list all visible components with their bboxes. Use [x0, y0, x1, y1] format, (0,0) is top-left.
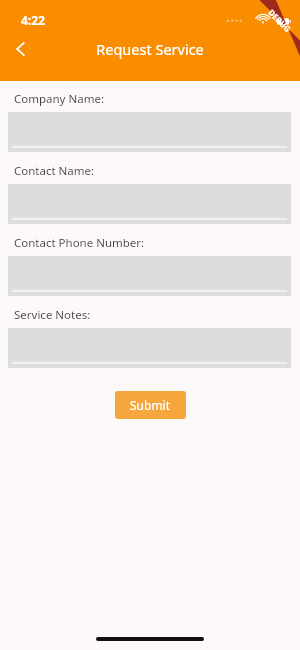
- button[interactable]: [8, 256, 291, 296]
- staticText: Submit: [130, 397, 171, 413]
- staticText: Request Service: [0, 39, 300, 59]
- button[interactable]: [8, 328, 291, 368]
- button[interactable]: [8, 184, 291, 224]
- button[interactable]: Submit: [115, 391, 186, 419]
- staticText: DEBUG: [266, 7, 294, 34]
- staticText: Service Notes:: [14, 307, 91, 323]
- button[interactable]: [8, 112, 291, 152]
- button[interactable]: Back: [0, 28, 42, 70]
- staticText: Contact Name:: [14, 163, 95, 179]
- staticText: Company Name:: [14, 91, 104, 107]
- staticText: 4:22: [21, 12, 45, 28]
- staticText: Contact Phone Number:: [14, 235, 145, 251]
